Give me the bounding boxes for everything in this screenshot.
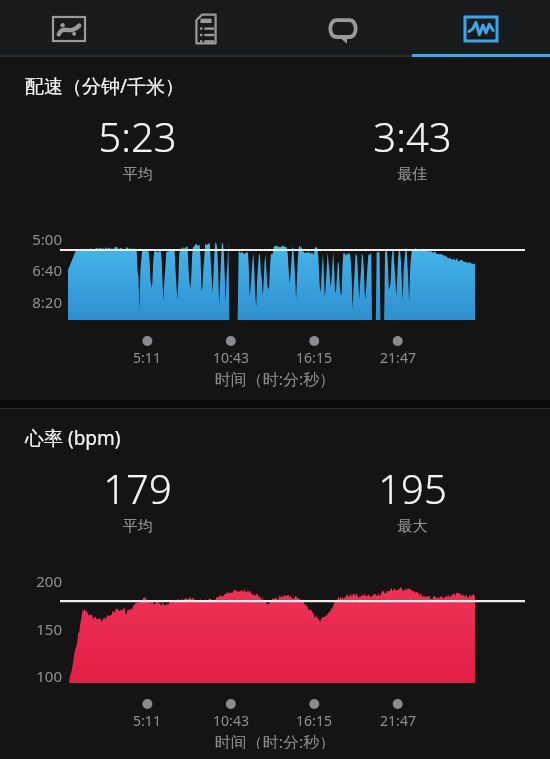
staticText: 6:40 [14, 260, 62, 280]
staticText: 时间（时:分:秒） [0, 731, 550, 749]
staticText: 平均 [0, 517, 275, 536]
button[interactable]: Summary [137, 0, 274, 57]
staticText: 8:20 [14, 292, 62, 312]
button[interactable]: 配速（分钟/千米） [0, 57, 550, 400]
button[interactable]: Laps [274, 0, 412, 57]
staticText: 5:00 [14, 229, 62, 249]
staticText: 5:11 [117, 711, 177, 730]
staticText: 最大 [275, 517, 550, 536]
staticText: 心率 (bpm) [25, 425, 121, 451]
button[interactable]: Charts [412, 0, 550, 57]
staticText: 10:43 [201, 711, 261, 730]
staticText: 平均 [0, 165, 275, 184]
staticText: 5:23 [0, 109, 275, 163]
staticText: 21:47 [368, 711, 428, 730]
button[interactable]: 心率 (bpm) [0, 409, 550, 759]
staticText: 200 [14, 571, 62, 591]
staticText: 配速（分钟/千米） [25, 73, 185, 99]
staticText: 195 [275, 461, 550, 515]
staticText: 5:11 [117, 348, 177, 367]
staticText: 3:43 [275, 109, 550, 163]
staticText: 时间（时:分:秒） [0, 368, 550, 390]
staticText: 21:47 [368, 348, 428, 367]
staticText: 100 [14, 666, 62, 686]
staticText: 179 [0, 461, 275, 515]
staticText: 16:15 [284, 711, 344, 730]
staticText: 16:15 [284, 348, 344, 367]
staticText: 150 [14, 619, 62, 639]
staticText: 最佳 [275, 165, 550, 184]
staticText: 10:43 [201, 348, 261, 367]
button[interactable]: Map [0, 0, 137, 57]
